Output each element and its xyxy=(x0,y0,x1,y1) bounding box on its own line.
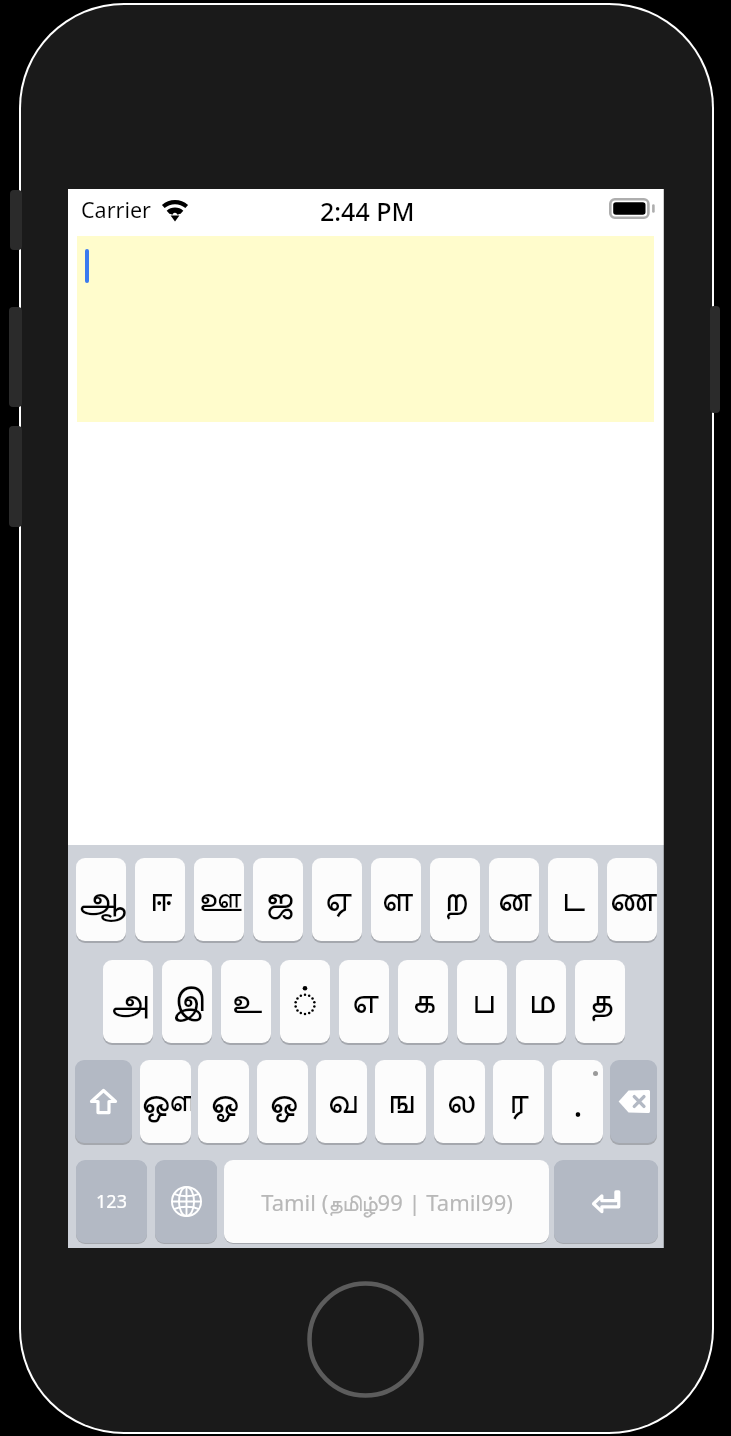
staticText: Carrier xyxy=(81,195,151,224)
staticText: ஏ xyxy=(323,881,352,918)
staticText: ற xyxy=(443,881,467,918)
staticText: ஔ xyxy=(140,1083,191,1120)
button[interactable] xyxy=(75,1060,132,1143)
staticText: வ xyxy=(326,1083,357,1120)
button[interactable]: ஓ xyxy=(198,1060,249,1143)
button[interactable] xyxy=(77,236,654,422)
staticText: க xyxy=(411,983,435,1020)
button[interactable]: ஏ xyxy=(312,858,362,941)
button[interactable]: ஔ xyxy=(140,1060,191,1143)
staticText: ஊ xyxy=(197,881,242,918)
button[interactable]: ஊ xyxy=(194,858,244,941)
button[interactable] xyxy=(610,1060,657,1143)
staticText: ர xyxy=(508,1083,529,1120)
button[interactable] xyxy=(280,960,330,1043)
button[interactable]: ள xyxy=(371,858,421,941)
button[interactable]: ஈ xyxy=(135,858,185,941)
staticText: ன xyxy=(496,881,532,918)
staticText: ப xyxy=(471,983,494,1020)
staticText: Tamil (தமிழ்99 | Tamil99) xyxy=(261,1187,513,1217)
staticText: ண xyxy=(608,881,657,918)
button[interactable]: ல xyxy=(434,1060,485,1143)
button[interactable]: ண xyxy=(607,858,657,941)
staticText: உ xyxy=(230,983,262,1020)
staticText: அ xyxy=(109,983,148,1020)
button[interactable]: ட xyxy=(548,858,598,941)
button[interactable]: உ xyxy=(221,960,271,1043)
button[interactable]: ஜ xyxy=(253,858,303,941)
button[interactable]: . xyxy=(552,1060,603,1143)
button[interactable]: ஒ xyxy=(257,1060,308,1143)
staticText: 2:44 PM xyxy=(320,194,415,228)
button[interactable]: த xyxy=(575,960,625,1043)
button[interactable]: இ xyxy=(162,960,212,1043)
button[interactable]: 123 xyxy=(76,1160,147,1243)
button[interactable]: அ xyxy=(103,960,153,1043)
staticText: ட xyxy=(561,881,585,918)
button[interactable] xyxy=(155,1160,217,1243)
staticText: ஒ xyxy=(268,1083,297,1120)
button[interactable]: ப xyxy=(457,960,507,1043)
staticText: ஈ xyxy=(149,881,172,918)
staticText: ஓ xyxy=(209,1083,238,1120)
button[interactable]: Tamil (தமிழ்99 | Tamil99) xyxy=(224,1160,549,1243)
staticText: எ xyxy=(350,983,379,1020)
staticText: இ xyxy=(171,983,204,1020)
staticText: ம xyxy=(528,983,555,1020)
button[interactable]: ம xyxy=(516,960,566,1043)
button[interactable]: ற xyxy=(430,858,480,941)
button[interactable]: க xyxy=(398,960,448,1043)
staticText: ஜ xyxy=(264,881,293,918)
staticText: . xyxy=(573,1077,583,1127)
button[interactable]: Home xyxy=(309,1283,422,1396)
button[interactable]: ர xyxy=(493,1060,544,1143)
button[interactable]: வ xyxy=(316,1060,367,1143)
staticText: ள xyxy=(380,881,413,918)
button[interactable]: ன xyxy=(489,858,539,941)
button[interactable]: ஆ xyxy=(76,858,126,941)
staticText: த xyxy=(588,983,613,1020)
button[interactable]: ங xyxy=(375,1060,426,1143)
button[interactable] xyxy=(554,1160,658,1243)
staticText: 123 xyxy=(96,1189,127,1214)
staticText: ஆ xyxy=(77,881,126,918)
button[interactable]: எ xyxy=(339,960,389,1043)
staticText: ல xyxy=(445,1083,475,1120)
staticText: ங xyxy=(387,1083,414,1120)
